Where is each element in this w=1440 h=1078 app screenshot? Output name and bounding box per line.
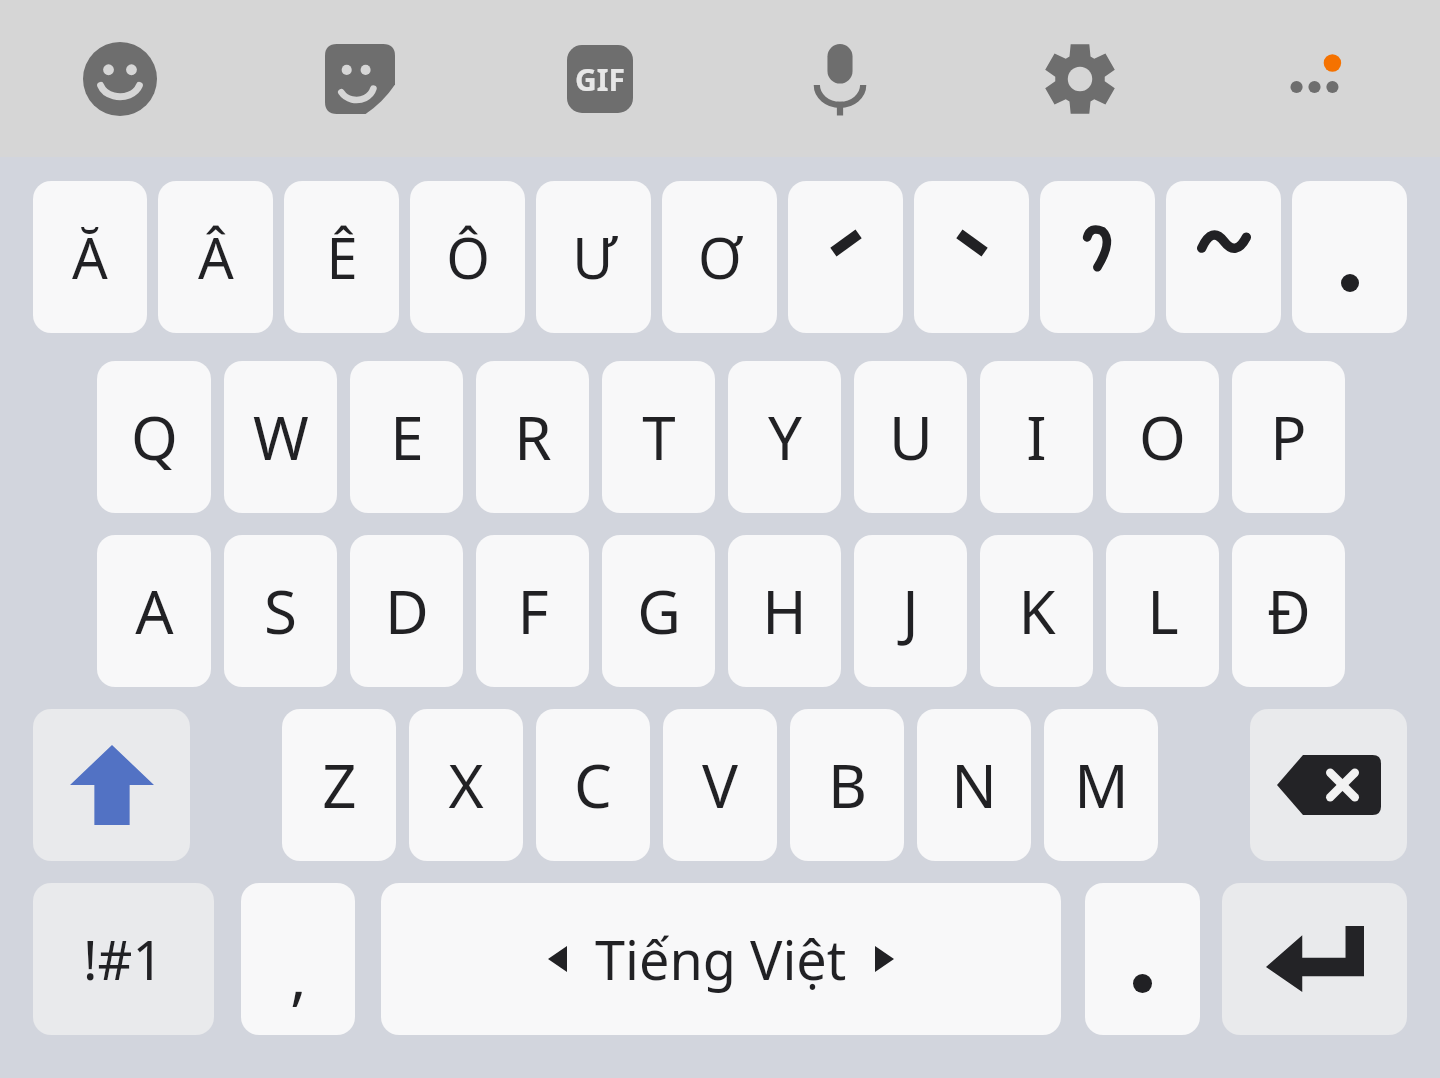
staticText: B (828, 744, 867, 826)
staticText: S (264, 570, 297, 652)
staticText: N (951, 744, 997, 826)
staticText: R (514, 396, 552, 478)
button[interactable]: !#1 (33, 883, 214, 1035)
staticText: Z (322, 744, 357, 826)
button[interactable]: Q (97, 361, 211, 513)
staticText: Ô (446, 219, 490, 295)
button[interactable]: Ê (284, 181, 399, 333)
staticText: J (902, 570, 919, 652)
button[interactable]: Y (728, 361, 841, 513)
staticText: O (1139, 396, 1186, 478)
staticText: H (762, 570, 807, 652)
button[interactable]: W (224, 361, 337, 513)
button[interactable]: P (1232, 361, 1345, 513)
staticText: GIF (575, 59, 625, 100)
button[interactable] (1085, 883, 1200, 1035)
staticText: L (1147, 570, 1179, 652)
staticText: Ư (572, 219, 616, 295)
staticText: F (517, 570, 549, 652)
button[interactable]: T (602, 361, 715, 513)
button[interactable]: , (241, 883, 355, 1035)
staticText: Ê (326, 219, 358, 295)
button[interactable]: L (1106, 535, 1219, 687)
button[interactable]: V (663, 709, 777, 861)
staticText: X (448, 744, 484, 826)
button[interactable]: D (350, 535, 463, 687)
staticText: Y (768, 396, 802, 478)
button[interactable]: Settings (960, 0, 1200, 157)
staticText: U (889, 396, 933, 478)
button[interactable]: Tiếng Việt (381, 883, 1061, 1035)
button[interactable]: Ă (33, 181, 147, 333)
button[interactable]: Emoji (0, 0, 240, 157)
staticText: W (253, 396, 309, 478)
button[interactable] (788, 181, 903, 333)
button[interactable]: M (1044, 709, 1158, 861)
button[interactable]: X (409, 709, 523, 861)
button[interactable]: GIF (480, 0, 720, 157)
staticText: C (574, 744, 612, 826)
button[interactable]: Stickers (240, 0, 480, 157)
button[interactable]: S (224, 535, 337, 687)
button[interactable] (1166, 181, 1281, 333)
staticText: Q (131, 396, 178, 478)
staticText: E (390, 396, 424, 478)
button[interactable]: R (476, 361, 589, 513)
staticText: Đ (1267, 570, 1311, 652)
staticText: Tiếng Việt (595, 922, 847, 996)
button[interactable] (1040, 181, 1155, 333)
button[interactable]: Voice input (720, 0, 960, 157)
staticText: !#1 (83, 922, 164, 996)
button[interactable]: Ư (536, 181, 651, 333)
button[interactable]: C (536, 709, 650, 861)
button[interactable]: K (980, 535, 1093, 687)
button[interactable]: Enter (1222, 883, 1407, 1035)
button[interactable]: Ơ (662, 181, 777, 333)
button[interactable]: B (790, 709, 904, 861)
button[interactable]: N (917, 709, 1031, 861)
button[interactable]: G (602, 535, 715, 687)
staticText: D (385, 570, 429, 652)
staticText: G (637, 570, 681, 652)
staticText: K (1018, 570, 1056, 652)
button[interactable] (914, 181, 1029, 333)
staticText: Â (198, 219, 234, 295)
staticText: A (135, 570, 174, 652)
staticText: P (1270, 396, 1307, 478)
button[interactable]: Ô (410, 181, 525, 333)
button[interactable]: E (350, 361, 463, 513)
button[interactable]: Â (158, 181, 273, 333)
staticText: V (702, 744, 738, 826)
button[interactable]: F (476, 535, 589, 687)
staticText: M (1074, 744, 1129, 826)
button[interactable]: Backspace (1250, 709, 1407, 861)
button[interactable] (1292, 181, 1407, 333)
staticText: I (1026, 396, 1047, 478)
button[interactable]: A (97, 535, 211, 687)
button[interactable]: Đ (1232, 535, 1345, 687)
button[interactable]: Z (282, 709, 396, 861)
button[interactable]: I (980, 361, 1093, 513)
staticText: Ă (72, 219, 108, 295)
button[interactable]: More options (1200, 0, 1440, 157)
button[interactable]: J (854, 535, 967, 687)
button[interactable]: O (1106, 361, 1219, 513)
staticText: Ơ (698, 219, 742, 295)
button[interactable]: H (728, 535, 841, 687)
staticText: T (642, 396, 676, 478)
button[interactable]: Shift (33, 709, 190, 861)
button[interactable]: U (854, 361, 967, 513)
staticText: , (290, 933, 307, 1017)
